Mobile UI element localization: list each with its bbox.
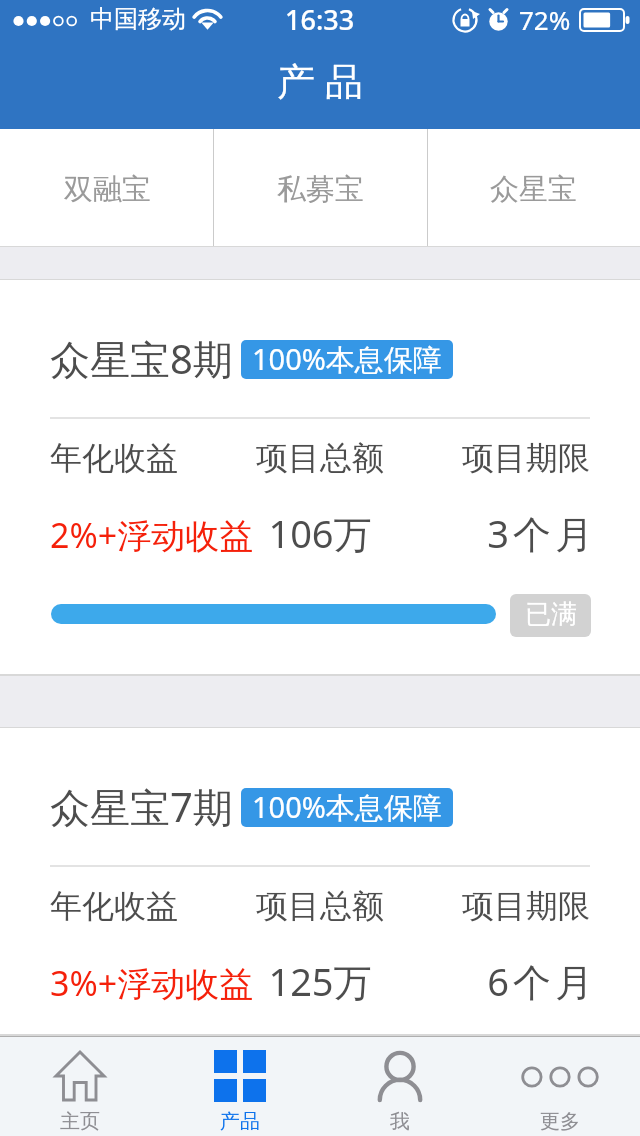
staticText: 项目期限	[410, 886, 590, 926]
button[interactable]: 已满	[510, 594, 591, 637]
staticText: 72%	[519, 2, 571, 37]
button[interactable]: 私募宝	[214, 129, 427, 247]
staticText: 已满	[525, 598, 577, 631]
staticText: 私募宝	[277, 171, 364, 208]
staticText: 项目总额	[230, 438, 410, 478]
button[interactable]: Home	[0, 1037, 160, 1136]
button[interactable]: 众星宝8期	[0, 279, 640, 676]
staticText: 2%+浮动收益	[50, 512, 280, 558]
button[interactable]: 众星宝7期	[0, 727, 640, 1036]
staticText: 年化收益	[50, 438, 230, 478]
staticText: 更多	[540, 1109, 580, 1134]
staticText: 众星宝7期	[50, 779, 233, 834]
button[interactable]: 双融宝	[0, 129, 214, 247]
staticText: 100%本息保障	[252, 340, 442, 378]
staticText: 中国移动	[90, 4, 186, 34]
staticText: 项目总额	[230, 886, 410, 926]
staticText: 项目期限	[410, 438, 590, 478]
staticText: 106万	[230, 507, 410, 559]
staticText: 产 品	[277, 54, 363, 106]
button[interactable]: Me	[320, 1037, 480, 1136]
staticText: 众星宝8期	[50, 331, 233, 386]
staticText: 6个月	[413, 955, 597, 1007]
staticText: 产品	[220, 1109, 260, 1134]
staticText: 众星宝	[490, 171, 577, 208]
staticText: 100%本息保障	[252, 788, 442, 826]
staticText: 我	[390, 1109, 410, 1134]
button[interactable]: Products	[160, 1037, 320, 1136]
button[interactable]: 众星宝	[427, 129, 640, 247]
staticText: 主页	[60, 1109, 100, 1134]
staticText: 16:33	[285, 1, 355, 38]
staticText: 125万	[230, 955, 410, 1007]
staticText: 年化收益	[50, 886, 230, 926]
staticText: 3个月	[413, 507, 597, 559]
button[interactable]: More	[480, 1037, 640, 1136]
staticText: 3%+浮动收益	[50, 960, 280, 1006]
staticText: 双融宝	[64, 171, 151, 208]
